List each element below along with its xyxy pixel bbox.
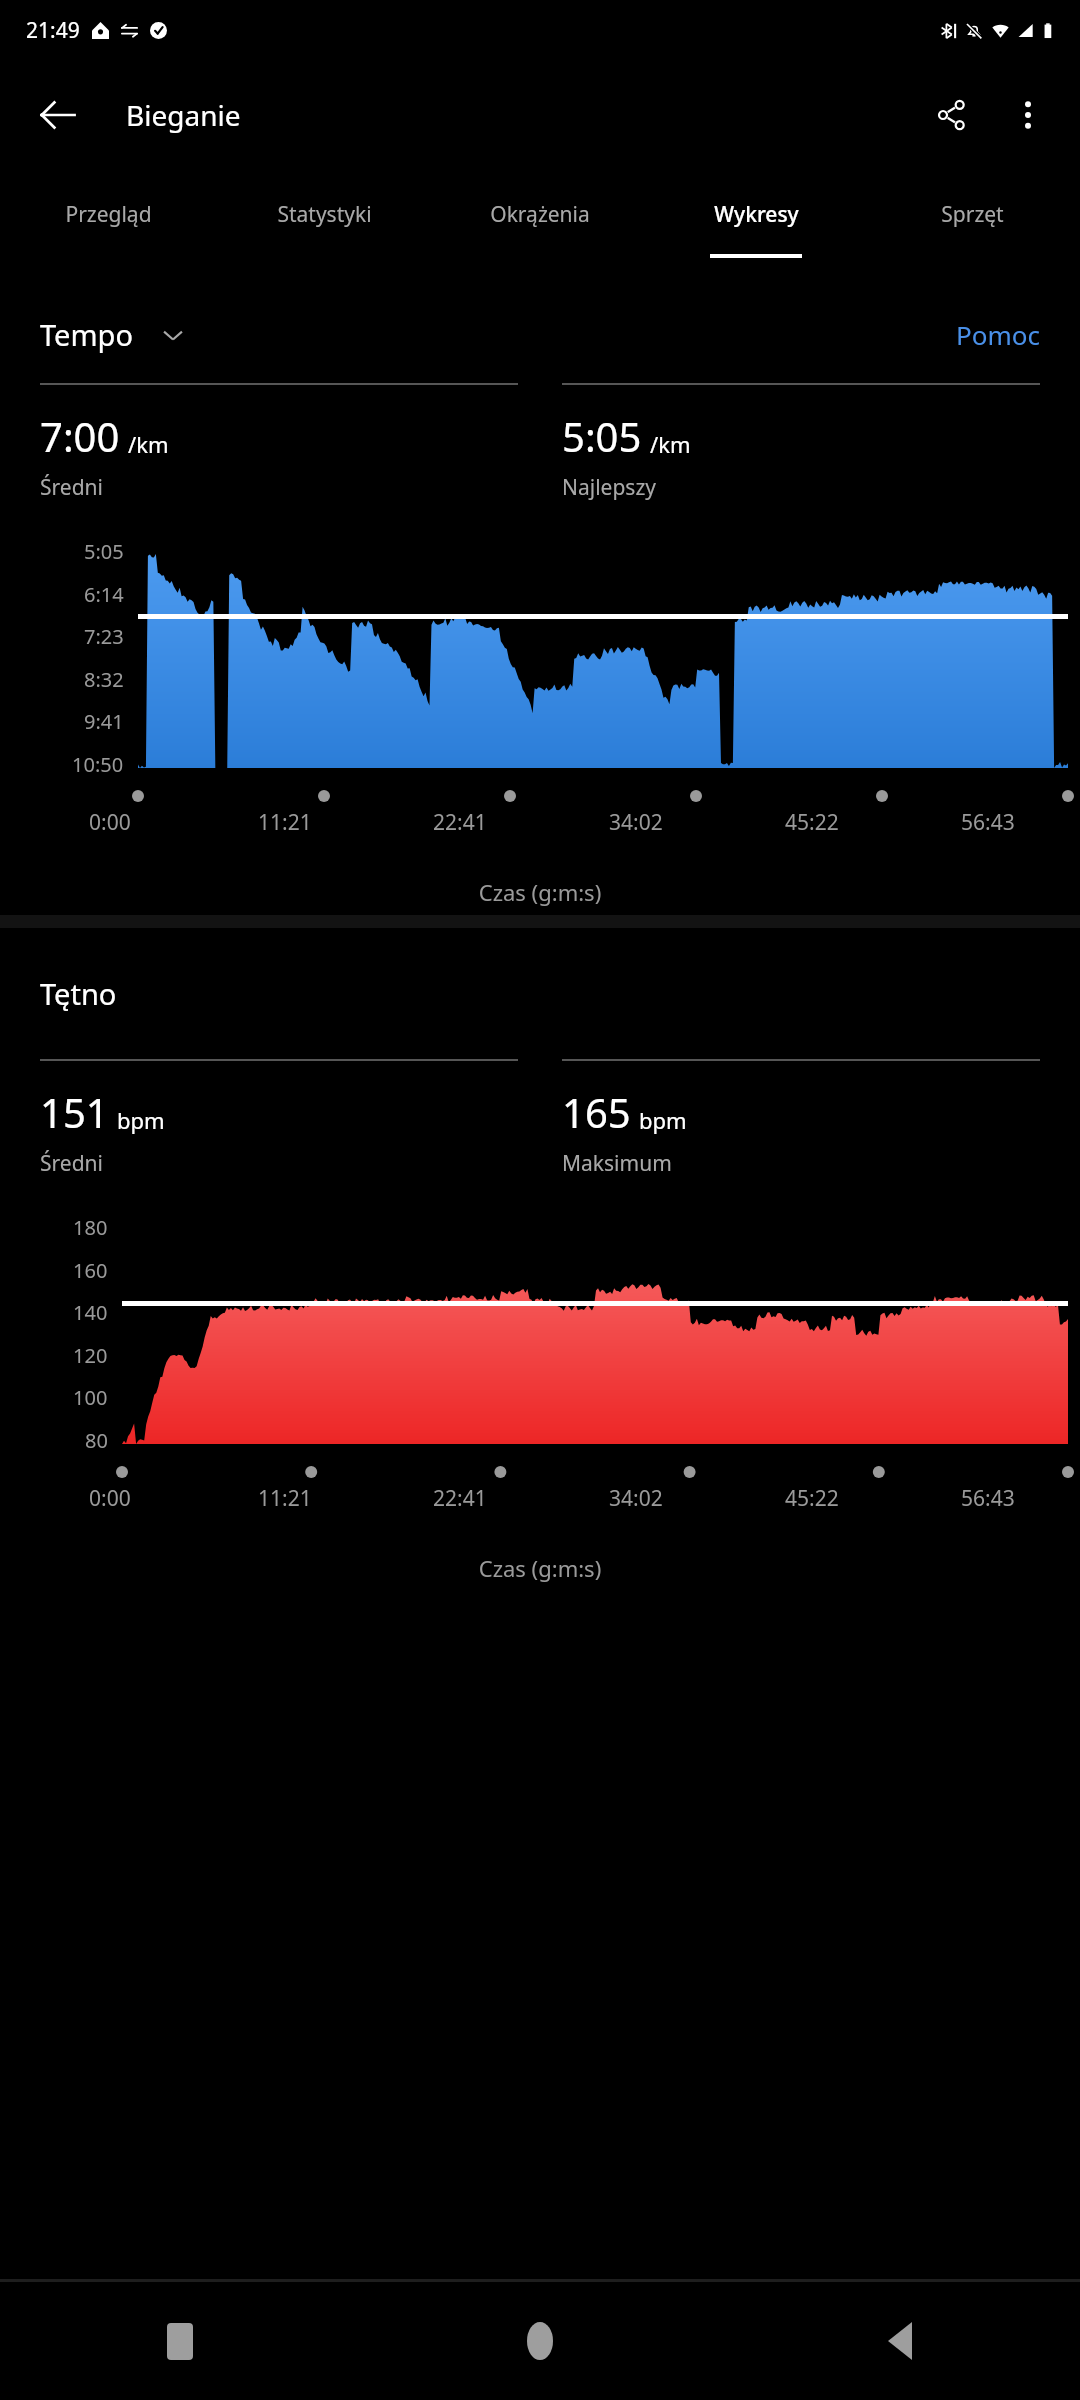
staticText: 7:23: [84, 623, 124, 650]
staticText: 165: [562, 1085, 631, 1139]
staticText: 0:00: [89, 1484, 131, 1513]
staticText: 5:05: [84, 538, 124, 565]
staticText: 5:05: [562, 409, 642, 463]
staticText: 45:22: [785, 1484, 839, 1513]
staticText: bpm: [639, 1105, 687, 1135]
staticText: 22:41: [433, 808, 487, 837]
staticText: 10:50: [72, 751, 124, 778]
staticText: 8:32: [84, 666, 124, 693]
staticText: 11:21: [258, 1484, 312, 1513]
staticText: Przegląd: [65, 200, 152, 229]
staticText: Czas (g:m:s): [0, 877, 1080, 907]
staticText: 22:41: [433, 1484, 487, 1513]
button[interactable]: Back: [720, 2282, 1080, 2400]
staticText: 6:14: [84, 581, 124, 608]
staticText: bpm: [117, 1105, 165, 1135]
staticText: Statystyki: [277, 200, 372, 229]
button[interactable]: More options: [990, 77, 1066, 153]
button[interactable]: Sprzęt: [864, 170, 1080, 285]
staticText: 0:00: [89, 808, 131, 837]
staticText: /km: [128, 429, 169, 459]
staticText: 151: [40, 1085, 109, 1139]
button[interactable]: Przegląd: [0, 170, 216, 285]
staticText: Najlepszy: [562, 473, 656, 502]
staticText: Średni: [40, 1149, 103, 1178]
staticText: Tempo: [40, 315, 133, 354]
staticText: Okrążenia: [490, 200, 590, 229]
staticText: 34:02: [609, 808, 663, 837]
staticText: /km: [650, 429, 691, 459]
staticText: Średni: [40, 473, 103, 502]
staticText: Wykresy: [714, 200, 799, 229]
button[interactable]: Statystyki: [216, 170, 432, 285]
staticText: 45:22: [785, 808, 839, 837]
staticText: Sprzęt: [941, 200, 1004, 229]
button[interactable]: Share: [914, 77, 990, 153]
staticText: 160: [73, 1257, 108, 1284]
button[interactable]: Wykresy: [648, 170, 864, 285]
staticText: 7:00: [40, 409, 120, 463]
staticText: Czas (g:m:s): [0, 1553, 1080, 1583]
button[interactable]: Back: [20, 77, 96, 153]
button[interactable]: Pomoc: [956, 317, 1040, 352]
staticText: Maksimum: [562, 1149, 672, 1178]
staticText: 120: [73, 1342, 108, 1369]
staticText: 11:21: [258, 808, 312, 837]
staticText: Pomoc: [956, 317, 1040, 352]
staticText: 34:02: [609, 1484, 663, 1513]
button[interactable]: Recent apps: [0, 2282, 360, 2400]
staticText: Tętno: [40, 974, 117, 1013]
staticText: 21:49: [26, 16, 80, 45]
staticText: Bieganie: [126, 96, 241, 134]
button[interactable]: Home: [360, 2282, 720, 2400]
staticText: 140: [73, 1299, 108, 1326]
staticText: 56:43: [961, 808, 1015, 837]
staticText: 56:43: [961, 1484, 1015, 1513]
staticText: 80: [85, 1427, 108, 1454]
staticText: 100: [73, 1384, 108, 1411]
button[interactable]: Tempo: [40, 315, 187, 354]
button[interactable]: Okrążenia: [432, 170, 648, 285]
staticText: 9:41: [84, 708, 124, 735]
staticText: 180: [73, 1214, 108, 1241]
